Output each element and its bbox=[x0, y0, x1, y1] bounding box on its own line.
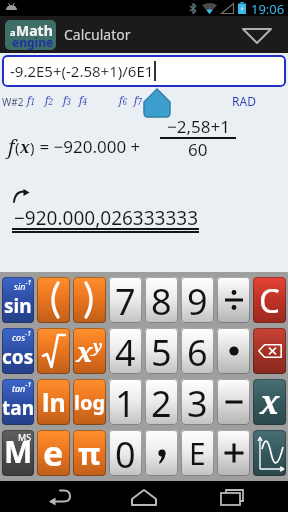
button[interactable] bbox=[73, 277, 106, 323]
button[interactable]: 7 bbox=[109, 277, 142, 323]
button[interactable] bbox=[253, 430, 286, 476]
staticText: -9.2E5+(-2.58+1)/6E1 bbox=[10, 61, 154, 81]
button[interactable]: 9 bbox=[181, 277, 214, 323]
button[interactable]: f3 bbox=[63, 92, 71, 108]
button[interactable]: 8 bbox=[145, 277, 178, 323]
staticText: cos-1 bbox=[12, 329, 32, 344]
button[interactable]: -9.2E5+(-2.58+1)/6E1 bbox=[2, 55, 286, 87]
staticText: E bbox=[189, 433, 206, 474]
staticText: W#2 bbox=[2, 95, 24, 109]
staticText: 2 bbox=[151, 379, 172, 425]
button[interactable]: e bbox=[37, 430, 70, 476]
button[interactable]: 2 bbox=[145, 379, 178, 425]
button[interactable]: a bbox=[0, 16, 288, 53]
staticText: 19:06 bbox=[251, 0, 285, 16]
button[interactable]: tan-1 bbox=[2, 379, 34, 425]
staticText: Math bbox=[16, 21, 53, 40]
button[interactable]: E bbox=[181, 430, 214, 476]
staticText: 7 bbox=[115, 277, 136, 323]
button[interactable]: 3 bbox=[181, 379, 214, 425]
staticText: Calculator bbox=[64, 25, 131, 44]
button[interactable]: log bbox=[73, 379, 106, 425]
staticText: = −920.000 + bbox=[35, 135, 141, 158]
button[interactable]: f6 bbox=[119, 92, 127, 108]
staticText: 60 bbox=[188, 138, 208, 161]
staticText: tan bbox=[2, 395, 34, 421]
button[interactable] bbox=[217, 430, 250, 476]
staticText: RAD bbox=[232, 93, 256, 109]
staticText: f bbox=[8, 133, 15, 160]
staticText: 3 bbox=[187, 379, 208, 425]
button[interactable] bbox=[40, 484, 80, 510]
staticText: 9 bbox=[187, 277, 208, 323]
staticText: e bbox=[43, 430, 64, 476]
staticText: sin bbox=[4, 293, 32, 319]
button[interactable] bbox=[37, 328, 70, 374]
button[interactable]: 4 bbox=[109, 328, 142, 374]
staticText: −920.000,026333333 bbox=[14, 205, 199, 231]
button[interactable] bbox=[217, 277, 250, 323]
button[interactable] bbox=[253, 328, 286, 374]
button[interactable]: sin-1 bbox=[2, 277, 34, 323]
staticText: log bbox=[74, 389, 106, 416]
staticText: ) bbox=[30, 137, 35, 157]
button[interactable]: MS bbox=[2, 430, 34, 476]
staticText: M bbox=[4, 431, 33, 472]
button[interactable]: xy bbox=[73, 328, 106, 374]
staticText: 6 bbox=[187, 328, 208, 374]
button[interactable]: 0 bbox=[109, 430, 142, 476]
button[interactable] bbox=[145, 430, 178, 476]
staticText: sin-1 bbox=[14, 278, 32, 293]
button[interactable]: C bbox=[253, 277, 286, 323]
button[interactable]: x bbox=[253, 379, 286, 425]
staticText: cos bbox=[2, 344, 34, 370]
staticText: engine bbox=[12, 34, 54, 50]
staticText: π bbox=[78, 433, 101, 474]
staticText: x bbox=[260, 380, 280, 424]
button[interactable]: f2 bbox=[45, 92, 53, 108]
staticText: MS bbox=[18, 431, 32, 443]
staticText: xy bbox=[76, 332, 103, 370]
button[interactable]: f4 bbox=[79, 92, 87, 108]
button[interactable]: f7 bbox=[134, 92, 142, 108]
staticText: 0 bbox=[115, 430, 136, 476]
button[interactable]: ln bbox=[37, 379, 70, 425]
button[interactable]: 1 bbox=[109, 379, 142, 425]
button[interactable]: π bbox=[73, 430, 106, 476]
staticText: a bbox=[10, 26, 16, 38]
staticText: ( bbox=[15, 137, 20, 157]
button[interactable]: 6 bbox=[181, 328, 214, 374]
staticText: −2,58+1 bbox=[167, 115, 230, 138]
staticText: tan-1 bbox=[12, 380, 32, 395]
button[interactable]: f1 bbox=[27, 92, 35, 108]
button[interactable] bbox=[37, 277, 70, 323]
button[interactable] bbox=[122, 484, 166, 510]
staticText: 4 bbox=[115, 328, 136, 374]
button[interactable] bbox=[212, 484, 252, 510]
staticText: ln bbox=[42, 385, 66, 419]
staticText: 8 bbox=[151, 277, 172, 323]
staticText: C bbox=[259, 278, 280, 323]
staticText: 5 bbox=[151, 328, 172, 374]
button[interactable]: cos-1 bbox=[2, 328, 34, 374]
button[interactable] bbox=[217, 328, 250, 374]
staticText: x bbox=[20, 136, 30, 158]
staticText: 1 bbox=[115, 379, 136, 425]
button[interactable]: 5 bbox=[145, 328, 178, 374]
button[interactable] bbox=[217, 379, 250, 425]
